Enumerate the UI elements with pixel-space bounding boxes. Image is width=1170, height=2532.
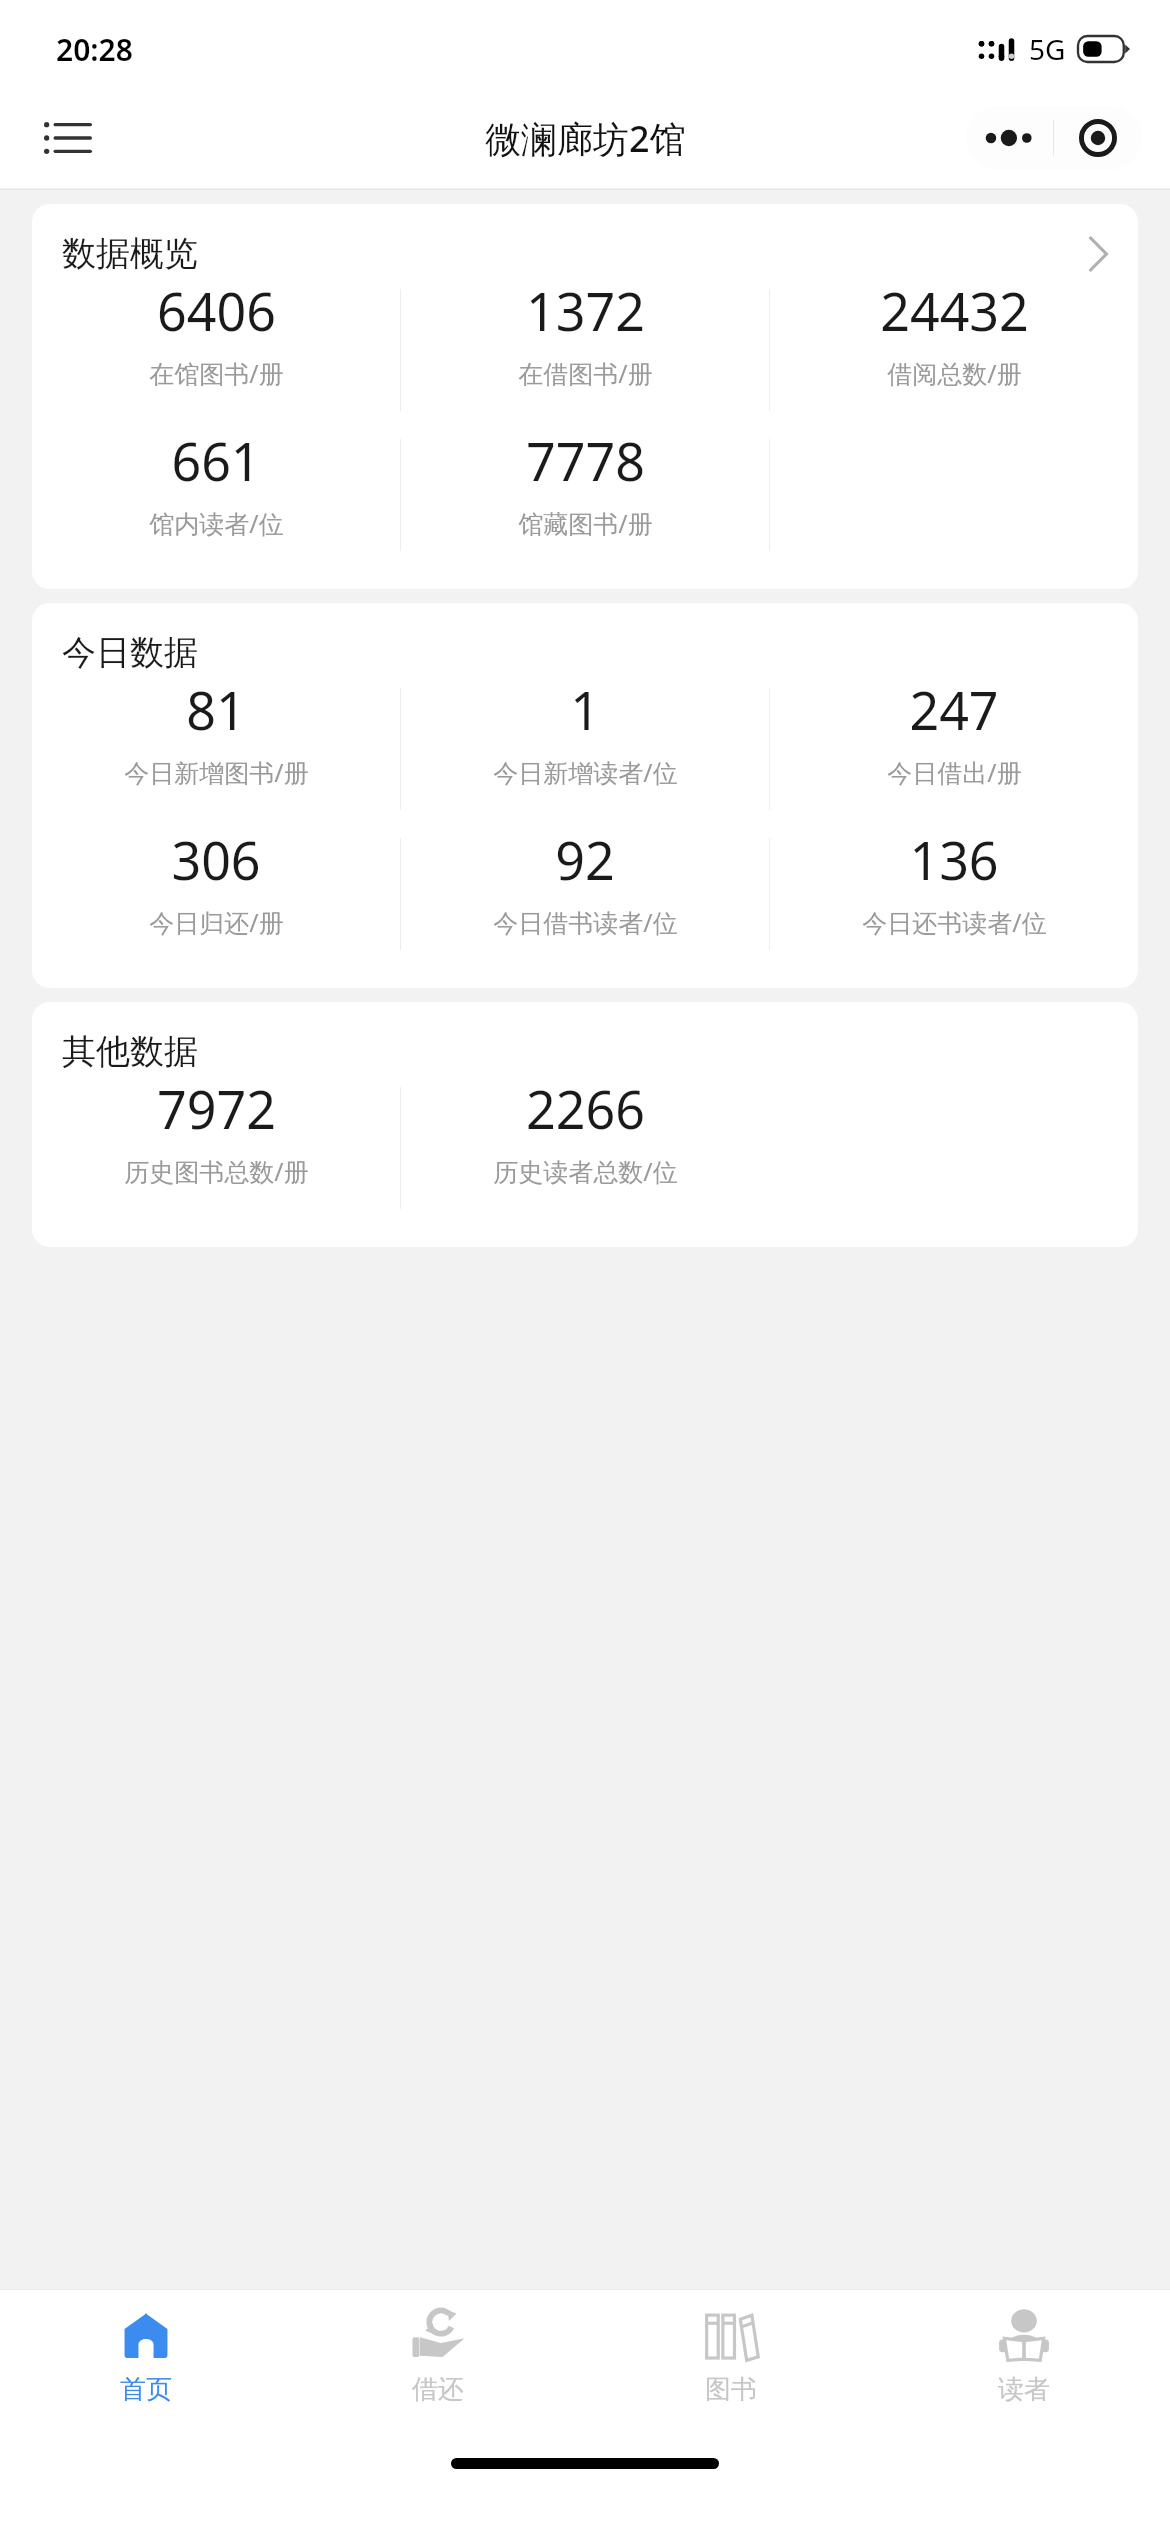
staticText: 在借图书/册 [518, 356, 653, 390]
staticText: 81 [186, 674, 246, 745]
button[interactable]: 图书 [584, 2290, 877, 2422]
staticText: 2266 [526, 1073, 645, 1144]
staticText: 馆内读者/位 [149, 506, 284, 540]
staticText: 今日新增读者/位 [493, 755, 678, 789]
staticText: 今日新增图书/册 [124, 755, 309, 789]
staticText: 136 [909, 824, 999, 895]
staticText: 读者 [998, 2373, 1050, 2406]
staticText: 借还 [412, 2373, 464, 2406]
staticText: 历史读者总数/位 [493, 1154, 678, 1188]
staticText: 历史图书总数/册 [124, 1154, 309, 1188]
staticText: 7778 [526, 425, 645, 496]
staticText: 数据概览 [62, 232, 198, 275]
button[interactable]: 借还 [292, 2290, 584, 2422]
staticText: 图书 [705, 2373, 757, 2406]
staticText: 306 [171, 824, 261, 895]
staticText: 今日借出/册 [887, 755, 1022, 789]
staticText: 24432 [880, 275, 1029, 346]
button[interactable]: More options [966, 106, 1142, 170]
staticText: 今日借书读者/位 [493, 905, 678, 939]
staticText: 1 [570, 674, 600, 745]
staticText: 92 [555, 824, 615, 895]
staticText: 在馆图书/册 [149, 356, 284, 390]
button[interactable]: 读者 [877, 2290, 1170, 2422]
button[interactable]: Menu [32, 102, 104, 174]
staticText: 借阅总数/册 [887, 356, 1022, 390]
staticText: 微澜廊坊2馆 [485, 114, 686, 163]
staticText: 1372 [526, 275, 645, 346]
button[interactable]: 数据概览 [32, 204, 1138, 589]
button[interactable]: 今日数据 [32, 603, 1138, 988]
button[interactable]: 首页 [0, 2290, 292, 2422]
button[interactable]: 其他数据 [32, 1002, 1138, 1247]
staticText: 今日数据 [62, 631, 198, 674]
staticText: 20:28 [56, 29, 133, 70]
staticText: 6406 [157, 275, 276, 346]
staticText: 其他数据 [62, 1030, 198, 1073]
staticText: 7972 [157, 1073, 276, 1144]
staticText: 5G [1029, 30, 1066, 68]
staticText: 首页 [120, 2373, 172, 2406]
staticText: 今日归还/册 [149, 905, 284, 939]
staticText: 今日还书读者/位 [862, 905, 1047, 939]
staticText: 馆藏图书/册 [518, 506, 653, 540]
staticText: 661 [171, 425, 261, 496]
staticText: 247 [909, 674, 999, 745]
